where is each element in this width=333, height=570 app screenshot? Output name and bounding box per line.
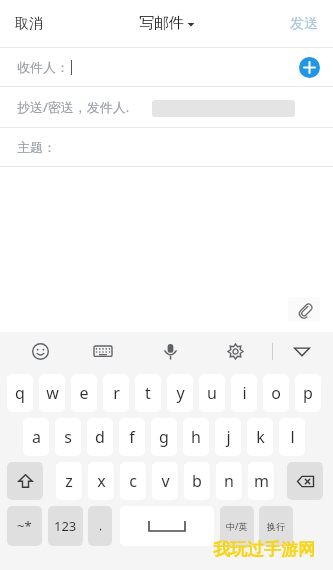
- button[interactable]: 主题：: [0, 128, 333, 166]
- button[interactable]: m: [248, 462, 274, 500]
- button[interactable]: ~*: [7, 506, 42, 546]
- button[interactable]: l: [279, 418, 305, 456]
- staticText: p: [303, 382, 313, 404]
- button[interactable]: s: [55, 418, 81, 456]
- button[interactable]: g: [151, 418, 177, 456]
- staticText: j: [226, 426, 231, 448]
- button[interactable]: Backspace: [287, 462, 323, 500]
- button[interactable]: 发送: [281, 9, 327, 39]
- button[interactable]: v: [152, 462, 178, 500]
- button[interactable]: p: [295, 374, 321, 412]
- staticText: s: [64, 426, 72, 448]
- staticText: 123: [54, 517, 77, 535]
- staticText: x: [97, 470, 106, 492]
- staticText: o: [271, 382, 281, 404]
- staticText: h: [191, 426, 201, 448]
- button[interactable]: Space: [120, 506, 214, 546]
- staticText: u: [207, 382, 217, 404]
- button[interactable]: q: [7, 374, 33, 412]
- staticText: n: [224, 470, 234, 492]
- staticText: r: [113, 382, 120, 404]
- button[interactable]: j: [215, 418, 241, 456]
- button[interactable]: d: [87, 418, 113, 456]
- button[interactable]: ，: [88, 506, 112, 546]
- button[interactable]: i: [231, 374, 257, 412]
- button[interactable]: 123: [48, 506, 83, 546]
- button[interactable]: Add recipient: [299, 57, 320, 78]
- staticText: e: [79, 382, 89, 404]
- staticText: c: [129, 470, 137, 492]
- button[interactable]: e: [71, 374, 97, 412]
- staticText: 写邮件: [139, 14, 184, 33]
- staticText: l: [290, 426, 295, 448]
- staticText: i: [242, 382, 247, 404]
- button[interactable]: k: [247, 418, 273, 456]
- button[interactable]: c: [120, 462, 146, 500]
- button[interactable]: h: [183, 418, 209, 456]
- button[interactable]: Emoji: [27, 338, 53, 364]
- button[interactable]: o: [263, 374, 289, 412]
- button[interactable]: y: [167, 374, 193, 412]
- button[interactable]: w: [39, 374, 65, 412]
- button[interactable]: a: [23, 418, 49, 456]
- staticText: 收件人：: [17, 59, 69, 75]
- button[interactable]: 取消: [6, 9, 52, 39]
- staticText: ~*: [17, 517, 32, 535]
- button[interactable]: b: [184, 462, 210, 500]
- button[interactable]: u: [199, 374, 225, 412]
- button[interactable]: n: [216, 462, 242, 500]
- staticText: y: [176, 382, 185, 404]
- button[interactable]: x: [88, 462, 114, 500]
- staticText: w: [46, 382, 59, 404]
- staticText: 换行: [267, 521, 285, 532]
- button[interactable]: 抄送/密送，发件人.: [0, 87, 333, 127]
- staticText: a: [32, 426, 41, 448]
- staticText: ，: [95, 519, 106, 533]
- button[interactable]: 中/英: [220, 506, 254, 546]
- staticText: 中/英: [226, 520, 248, 532]
- staticText: g: [159, 426, 169, 448]
- button[interactable]: 换行: [259, 506, 293, 546]
- staticText: v: [161, 470, 170, 492]
- staticText: 我玩过手游网: [213, 539, 315, 560]
- button[interactable]: 写邮件: [133, 10, 201, 37]
- staticText: m: [254, 470, 269, 492]
- button[interactable]: Settings: [222, 338, 248, 364]
- staticText: d: [95, 426, 105, 448]
- staticText: 发送: [290, 15, 318, 33]
- staticText: 取消: [15, 15, 43, 33]
- button[interactable]: Voice input: [157, 338, 183, 364]
- staticText: q: [15, 382, 25, 404]
- button[interactable]: f: [119, 418, 145, 456]
- button[interactable]: 收件人：: [0, 48, 333, 86]
- button[interactable]: z: [56, 462, 82, 500]
- staticText: t: [145, 382, 151, 404]
- button[interactable]: Keyboard layout: [90, 338, 116, 364]
- button[interactable]: Hide keyboard: [289, 338, 315, 364]
- staticText: 主题：: [17, 139, 56, 155]
- button[interactable]: Shift: [7, 462, 43, 500]
- button[interactable]: r: [103, 374, 129, 412]
- staticText: b: [192, 470, 202, 492]
- button[interactable]: t: [135, 374, 161, 412]
- staticText: z: [65, 470, 73, 492]
- staticText: 抄送/密送，发件人.: [17, 98, 130, 116]
- staticText: k: [256, 426, 265, 448]
- button[interactable]: Attach file: [288, 297, 320, 321]
- staticText: f: [129, 426, 135, 448]
